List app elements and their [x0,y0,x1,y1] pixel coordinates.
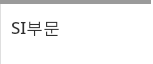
button[interactable]: SI부문 [11,16,61,39]
